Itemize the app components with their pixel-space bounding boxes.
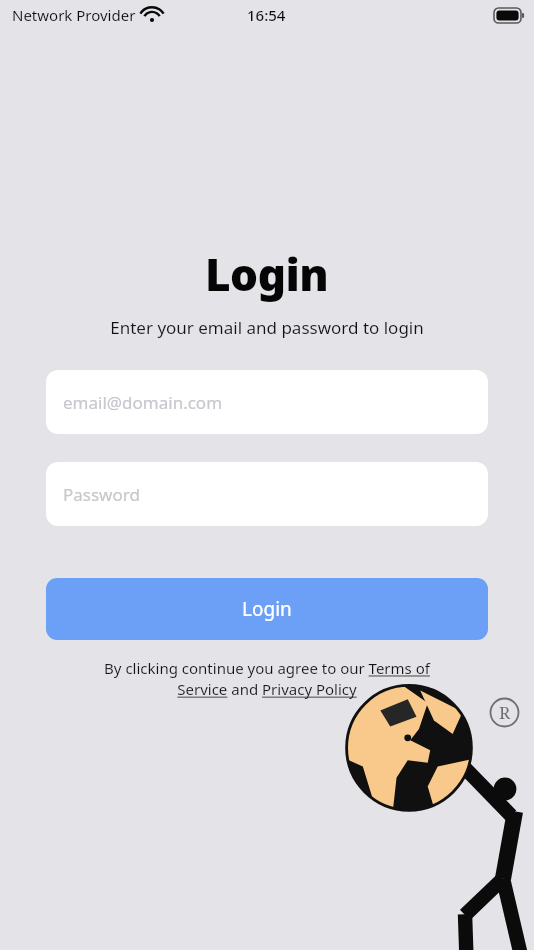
button[interactable]: By clicking continue you agree to our Te…: [78, 658, 456, 700]
staticText: By clicking continue you agree to our Te…: [78, 658, 456, 700]
staticText: email@domain.com: [63, 391, 223, 414]
button[interactable]: Password: [46, 462, 488, 526]
staticText: Enter your email and password to login: [110, 316, 424, 339]
staticText: Login: [242, 596, 292, 622]
other: Atlas logo: [334, 670, 534, 950]
staticText: 16:54: [247, 5, 286, 25]
button[interactable]: Login: [46, 578, 488, 640]
staticText: R: [499, 701, 511, 724]
staticText: Login: [205, 244, 329, 304]
button[interactable]: email@domain.com: [46, 370, 488, 434]
staticText: Network Provider: [12, 5, 136, 25]
staticText: Password: [63, 483, 140, 506]
